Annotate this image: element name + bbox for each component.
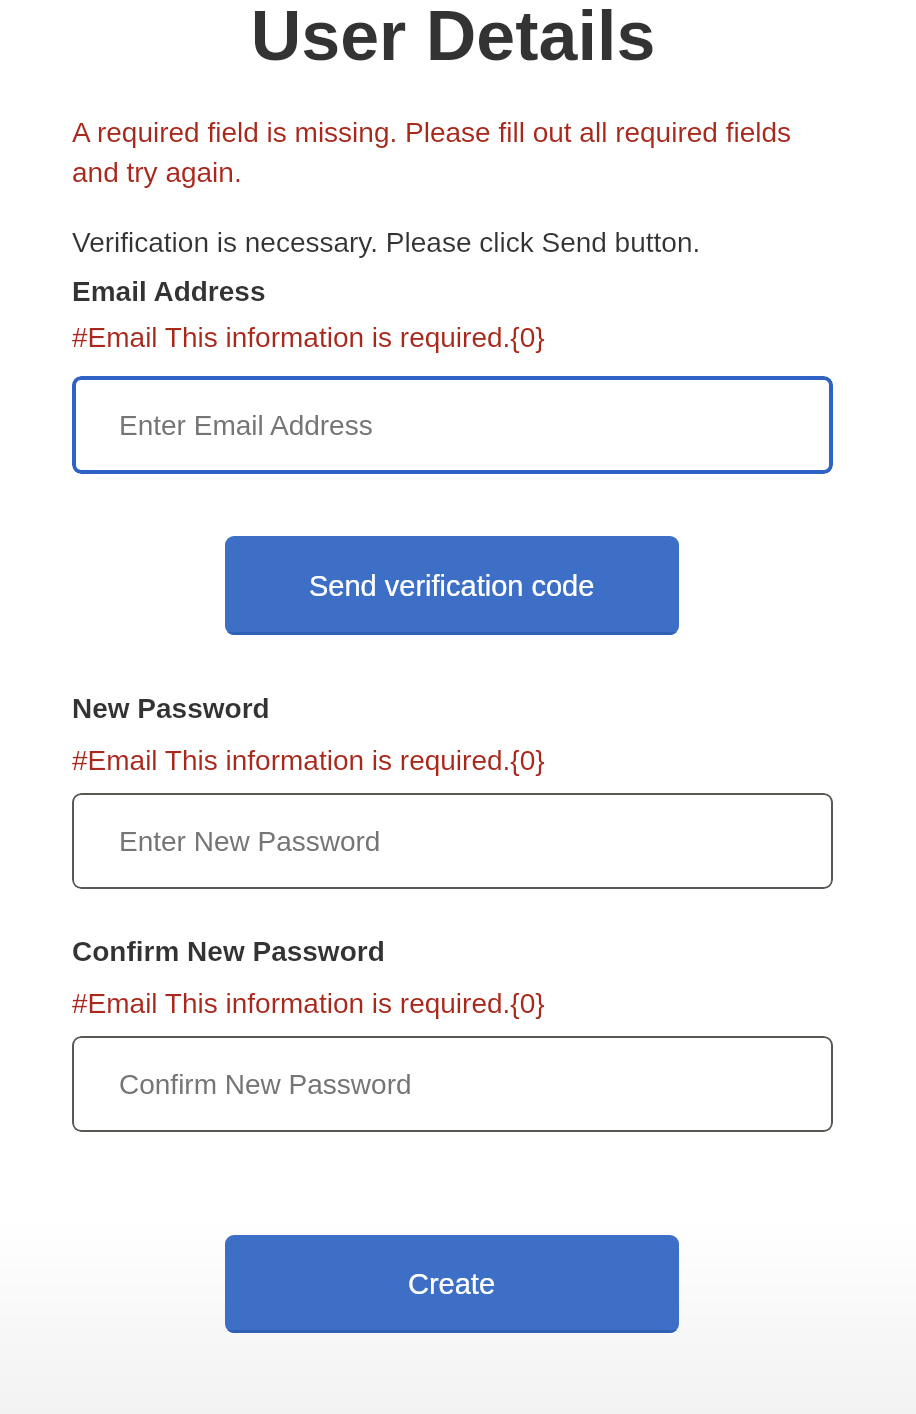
- staticText: Create: [408, 1268, 496, 1300]
- staticText: Send verification code: [309, 570, 595, 602]
- button[interactable]: Enter Email Address: [72, 376, 833, 474]
- staticText: User Details: [0, 0, 911, 75]
- staticText: #Email This information is required.{0}: [72, 745, 545, 776]
- staticText: Confirm New Password: [119, 1069, 412, 1100]
- staticText: Verification is necessary. Please click …: [72, 227, 701, 258]
- staticText: A required field is missing. Please fill…: [72, 117, 792, 188]
- staticText: #Email This information is required.{0}: [72, 988, 545, 1019]
- staticText: #Email This information is required.{0}: [72, 322, 545, 353]
- staticText: Confirm New Password: [72, 936, 385, 967]
- button[interactable]: Send verification code: [225, 536, 679, 635]
- button[interactable]: Enter New Password: [72, 793, 833, 889]
- button[interactable]: Confirm New Password: [72, 1036, 833, 1132]
- button[interactable]: Create: [225, 1235, 679, 1333]
- staticText: Enter Email Address: [119, 410, 373, 441]
- staticText: New Password: [72, 693, 270, 724]
- staticText: Enter New Password: [119, 826, 381, 857]
- staticText: Email Address: [72, 276, 266, 307]
